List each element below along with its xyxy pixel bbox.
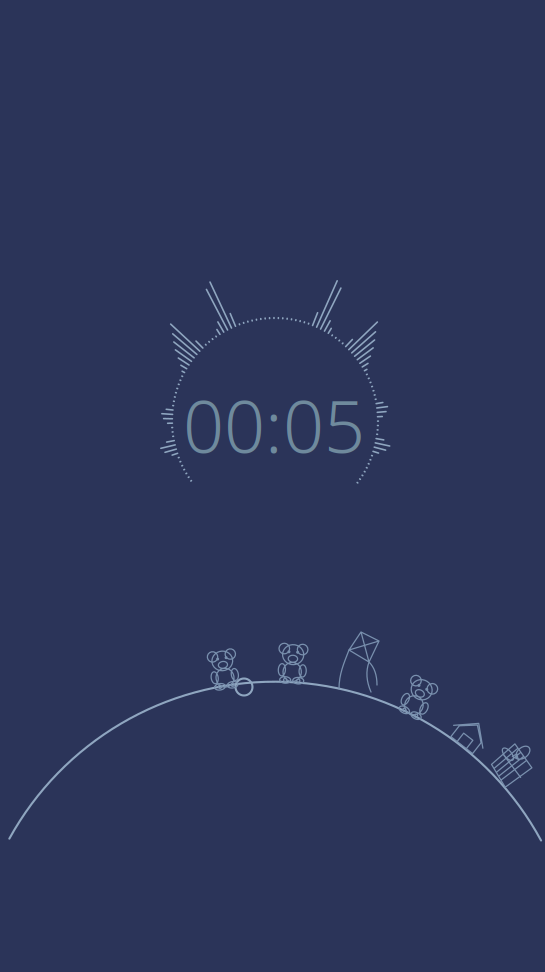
staticText: 00:05 [183, 377, 365, 473]
